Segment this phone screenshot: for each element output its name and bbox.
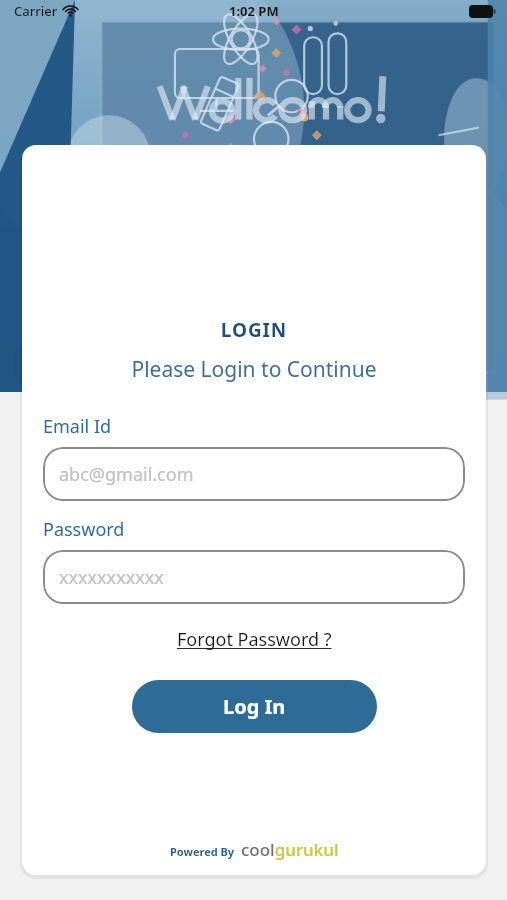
other: Wi-Fi signal [63, 5, 78, 17]
button[interactable]: Forgot Password ? [22, 627, 486, 652]
staticText: coolgurukul [241, 838, 339, 861]
staticText: LOGIN [22, 317, 486, 343]
button[interactable]: Password input field [43, 550, 465, 604]
staticText: Email Id [43, 414, 112, 439]
staticText: Forgot Password ? [177, 627, 332, 652]
staticText: Password [43, 517, 125, 542]
staticText: xxxxxxxxxxx [59, 565, 164, 590]
staticText: 1:02 PM [229, 2, 279, 20]
button[interactable]: Email Id input field [43, 447, 465, 501]
staticText: Carrier [14, 2, 58, 20]
other: Battery full [469, 5, 496, 18]
staticText: Please Login to Continue [22, 355, 486, 384]
staticText: Log In [223, 693, 286, 720]
staticText: abc@gmail.com [59, 462, 194, 487]
staticText: Powered By [170, 844, 235, 859]
button[interactable]: Log In [132, 680, 377, 733]
